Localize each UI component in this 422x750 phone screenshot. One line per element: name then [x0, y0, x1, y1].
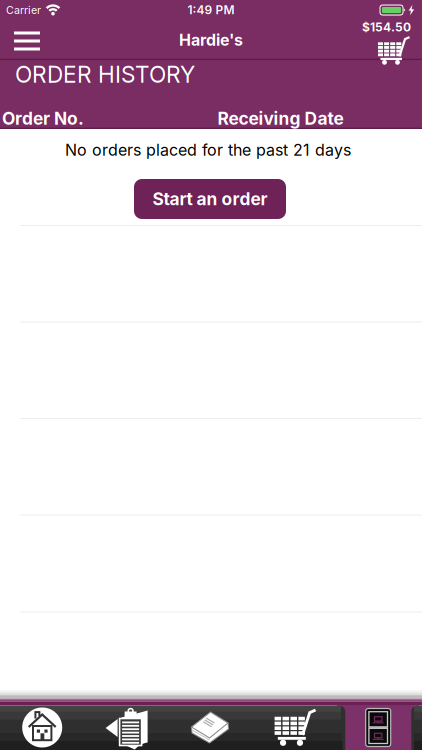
staticText: $154.50	[362, 20, 411, 34]
button[interactable]: Home	[0, 705, 84, 749]
button[interactable]: Catalog	[169, 705, 253, 749]
button[interactable]: Menu	[7, 24, 47, 58]
button[interactable]: Kiosk	[340, 705, 416, 750]
staticText: Start an order	[152, 189, 267, 209]
button[interactable]: Cart	[253, 705, 337, 749]
staticText: ORDER HISTORY	[15, 61, 195, 88]
staticText: Receiving Date	[217, 108, 343, 129]
staticText: Hardie's	[179, 31, 243, 49]
button[interactable]: Order history	[85, 705, 169, 749]
staticText: 1:49 PM	[187, 3, 234, 17]
button[interactable]: Cart, $154.50	[349, 19, 411, 65]
staticText: No orders placed for the past 21 days	[65, 141, 351, 159]
staticText: Order No.	[2, 108, 84, 129]
staticText: Carrier	[6, 4, 41, 16]
button[interactable]: Start an order	[134, 179, 286, 219]
